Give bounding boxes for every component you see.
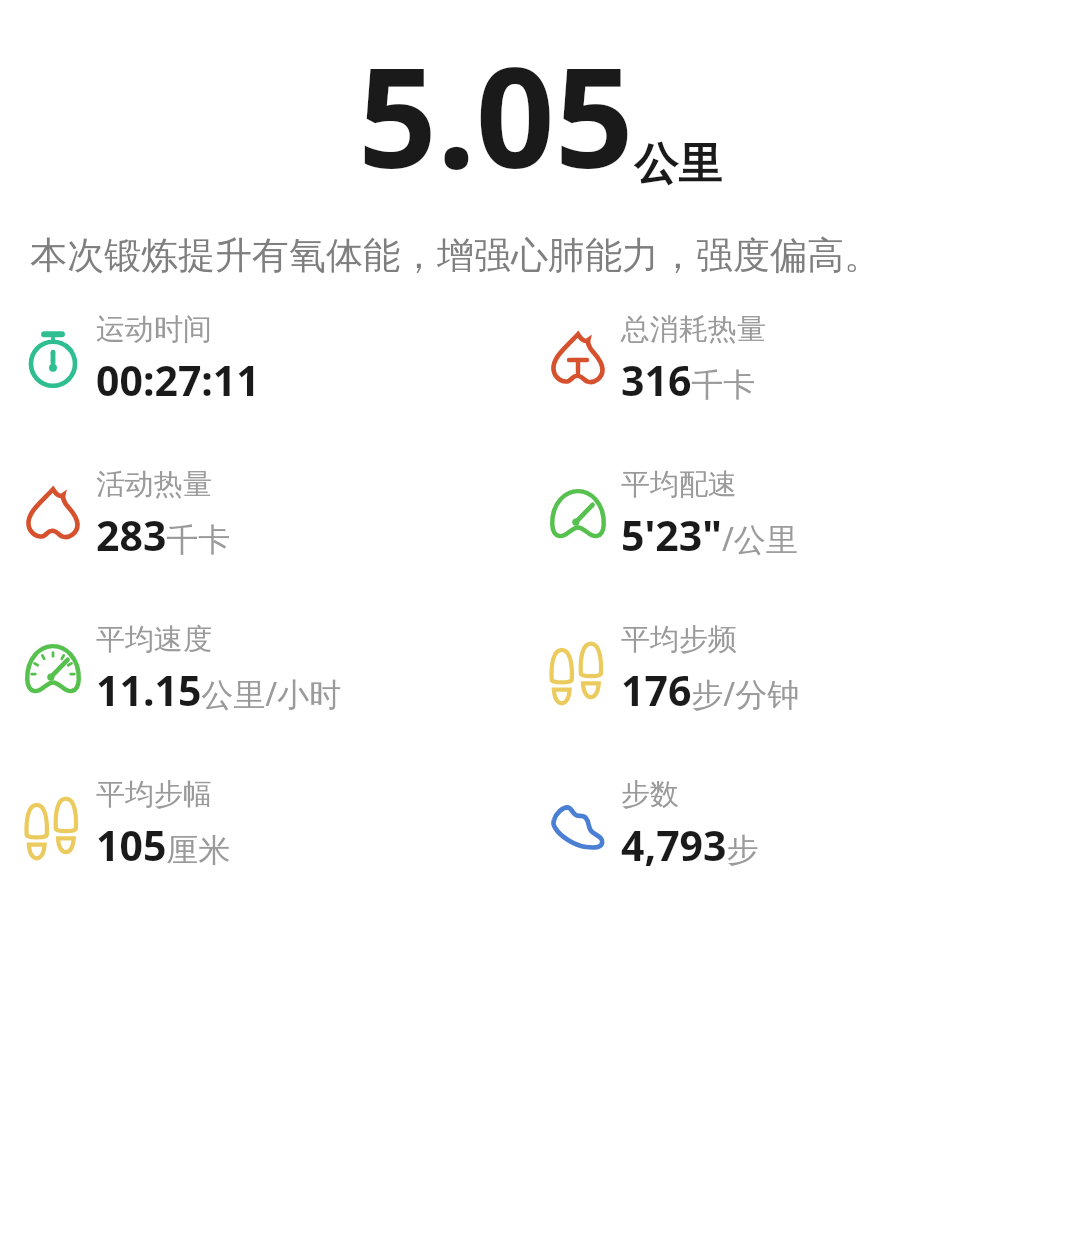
other: 平均速度	[22, 639, 84, 701]
other: 运动时间	[22, 329, 84, 391]
staticText: 5.05	[358, 20, 634, 208]
staticText: 本次锻炼提升有氧体能，增强心肺能力，强度偏高。	[30, 232, 1050, 279]
staticText: 平均配速	[621, 466, 737, 503]
staticText: 公里	[634, 137, 722, 192]
staticText: 176步/分钟	[621, 662, 800, 718]
button[interactable]: 步数	[547, 776, 1072, 873]
staticText: 283千卡	[96, 507, 231, 563]
staticText: 11.15公里/小时	[96, 662, 342, 718]
staticText: 活动热量	[96, 466, 212, 503]
staticText: 4,793步	[621, 817, 759, 873]
button[interactable]: 运动时间	[22, 311, 547, 408]
other: 步数	[547, 794, 609, 856]
staticText: 平均步频	[621, 621, 737, 658]
staticText: 5'23"/公里	[621, 507, 798, 563]
staticText: 105厘米	[96, 817, 231, 873]
button[interactable]: 总消耗热量	[547, 311, 1072, 408]
staticText: 总消耗热量	[621, 311, 766, 348]
staticText: 平均速度	[96, 621, 212, 658]
other: 平均步幅	[22, 794, 84, 856]
button[interactable]: 平均速度	[22, 621, 547, 718]
other: 活动热量	[22, 484, 84, 546]
button[interactable]: 活动热量	[22, 466, 547, 563]
button[interactable]: 平均步幅	[22, 776, 547, 873]
other: 平均配速	[547, 484, 609, 546]
other: 平均步频	[547, 639, 609, 701]
button[interactable]: 平均配速	[547, 466, 1072, 563]
button[interactable]: 平均步频	[547, 621, 1072, 718]
other: 总消耗热量	[547, 329, 609, 391]
staticText: 316千卡	[621, 352, 756, 408]
staticText: 00:27:11	[96, 352, 260, 408]
staticText: 步数	[621, 776, 679, 813]
staticText: 平均步幅	[96, 776, 212, 813]
staticText: 运动时间	[96, 311, 212, 348]
